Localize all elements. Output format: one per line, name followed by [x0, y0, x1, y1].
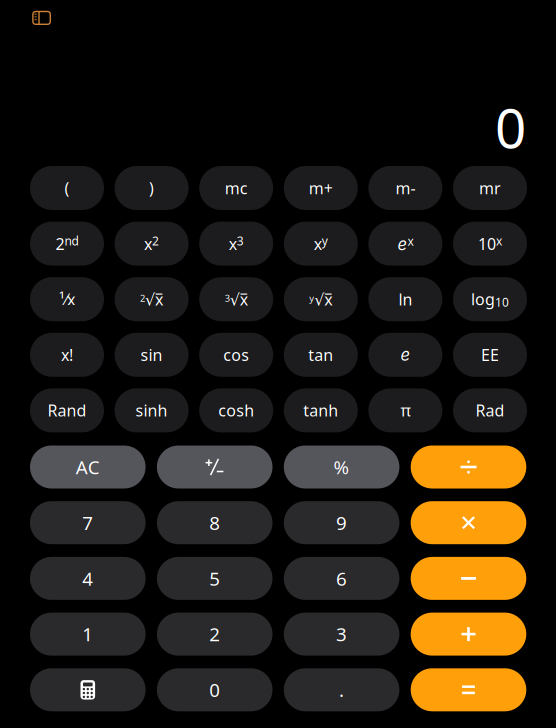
staticText: 2: [209, 622, 220, 646]
button[interactable]: 1: [30, 613, 146, 656]
staticText: m-: [395, 177, 415, 199]
button[interactable]: Cube root: [199, 277, 273, 321]
button[interactable]: Basic Calculator: [30, 668, 146, 711]
button[interactable]: Natural logarithm: [368, 277, 442, 321]
staticText: AC: [76, 455, 100, 479]
button[interactable]: Equals: [411, 668, 526, 711]
staticText: cosh: [218, 400, 254, 421]
button[interactable]: Ten to the power of x: [453, 222, 527, 266]
button[interactable]: Sine: [115, 333, 189, 377]
button[interactable]: x cubed: [199, 222, 273, 266]
staticText: 0: [495, 91, 526, 163]
staticText: π: [400, 400, 410, 421]
staticText: 10x: [478, 233, 502, 254]
button[interactable]: Multiply: [411, 501, 526, 544]
staticText: Rand: [47, 400, 86, 421]
button[interactable]: Pi: [368, 388, 442, 432]
button[interactable]: Add: [411, 613, 526, 656]
staticText: 0: [209, 677, 220, 702]
button[interactable]: Show Sidebar: [20, 0, 64, 36]
staticText: 2√x̅: [140, 289, 163, 310]
staticText: xy: [314, 233, 328, 254]
staticText: e: [400, 345, 410, 365]
staticText: sin: [141, 344, 163, 365]
button[interactable]: One divided by x: [30, 277, 104, 321]
button[interactable]: Memory subtract: [368, 166, 442, 210]
button[interactable]: Hyperbolic tangent: [284, 388, 358, 432]
button[interactable]: Cosine: [199, 333, 273, 377]
button[interactable]: 3: [284, 613, 399, 656]
button[interactable]: y-th root of x: [284, 277, 358, 321]
staticText: tan: [308, 344, 333, 365]
staticText: cos: [223, 344, 249, 365]
button[interactable]: Open parenthesis: [30, 166, 104, 210]
button[interactable]: 2: [157, 613, 272, 656]
staticText: 8: [209, 510, 220, 535]
button[interactable]: 4: [30, 557, 146, 600]
staticText: EE: [481, 344, 499, 365]
button[interactable]: Logarithm base ten: [453, 277, 527, 321]
staticText: 2nd: [55, 233, 78, 254]
button[interactable]: 6: [284, 557, 399, 600]
staticText: 7: [82, 510, 93, 535]
button[interactable]: Second functions: [30, 222, 104, 266]
button[interactable]: Memory recall: [453, 166, 527, 210]
button[interactable]: All Clear: [30, 445, 146, 488]
staticText: x2: [144, 233, 159, 254]
staticText: 4: [82, 566, 93, 591]
staticText: 3√x̅: [225, 289, 248, 310]
button[interactable]: 0: [157, 668, 272, 711]
button[interactable]: Subtract: [411, 557, 526, 600]
staticText: x!: [61, 344, 73, 365]
button[interactable]: 9: [284, 501, 399, 544]
staticText: %: [334, 455, 350, 479]
staticText: 6: [336, 566, 347, 591]
staticText: .: [339, 677, 344, 702]
button[interactable]: Decimal Point: [284, 668, 399, 711]
button[interactable]: Euler's number: [368, 333, 442, 377]
staticText: 9: [336, 510, 347, 535]
staticText: ex: [397, 233, 413, 254]
button[interactable]: x squared: [115, 222, 189, 266]
staticText: log10: [471, 288, 509, 310]
staticText: Rad: [475, 400, 504, 421]
button[interactable]: 7: [30, 501, 146, 544]
button[interactable]: x to the power of y: [284, 222, 358, 266]
button[interactable]: 8: [157, 501, 272, 544]
button[interactable]: e to the power of x: [368, 222, 442, 266]
staticText: mr: [479, 177, 501, 199]
button[interactable]: 5: [157, 557, 272, 600]
staticText: x3: [229, 233, 244, 254]
staticText: m+: [309, 177, 333, 199]
button[interactable]: Memory add: [284, 166, 358, 210]
staticText: ): [149, 177, 154, 199]
button[interactable]: Square root: [115, 277, 189, 321]
staticText: ln: [398, 289, 412, 310]
button[interactable]: Exponent: [453, 333, 527, 377]
button[interactable]: Random: [30, 388, 104, 432]
button[interactable]: Close parenthesis: [115, 166, 189, 210]
staticText: tanh: [303, 400, 338, 421]
button[interactable]: Divide: [411, 445, 526, 488]
staticText: 5: [209, 566, 220, 591]
staticText: 3: [336, 622, 347, 646]
staticText: y√x̅: [309, 289, 332, 310]
button[interactable]: Change Sign: [157, 445, 272, 488]
staticText: (: [64, 177, 69, 199]
button[interactable]: Hyperbolic cosine: [199, 388, 273, 432]
button[interactable]: Percent: [284, 445, 399, 488]
button[interactable]: Hyperbolic sine: [115, 388, 189, 432]
button[interactable]: Memory clear: [199, 166, 273, 210]
staticText: sinh: [136, 400, 168, 421]
staticText: 1: [82, 622, 93, 646]
staticText: ¹⁄x: [59, 289, 75, 310]
staticText: mc: [225, 177, 248, 199]
button[interactable]: Factorial: [30, 333, 104, 377]
button[interactable]: Radians: [453, 388, 527, 432]
button[interactable]: Tangent: [284, 333, 358, 377]
